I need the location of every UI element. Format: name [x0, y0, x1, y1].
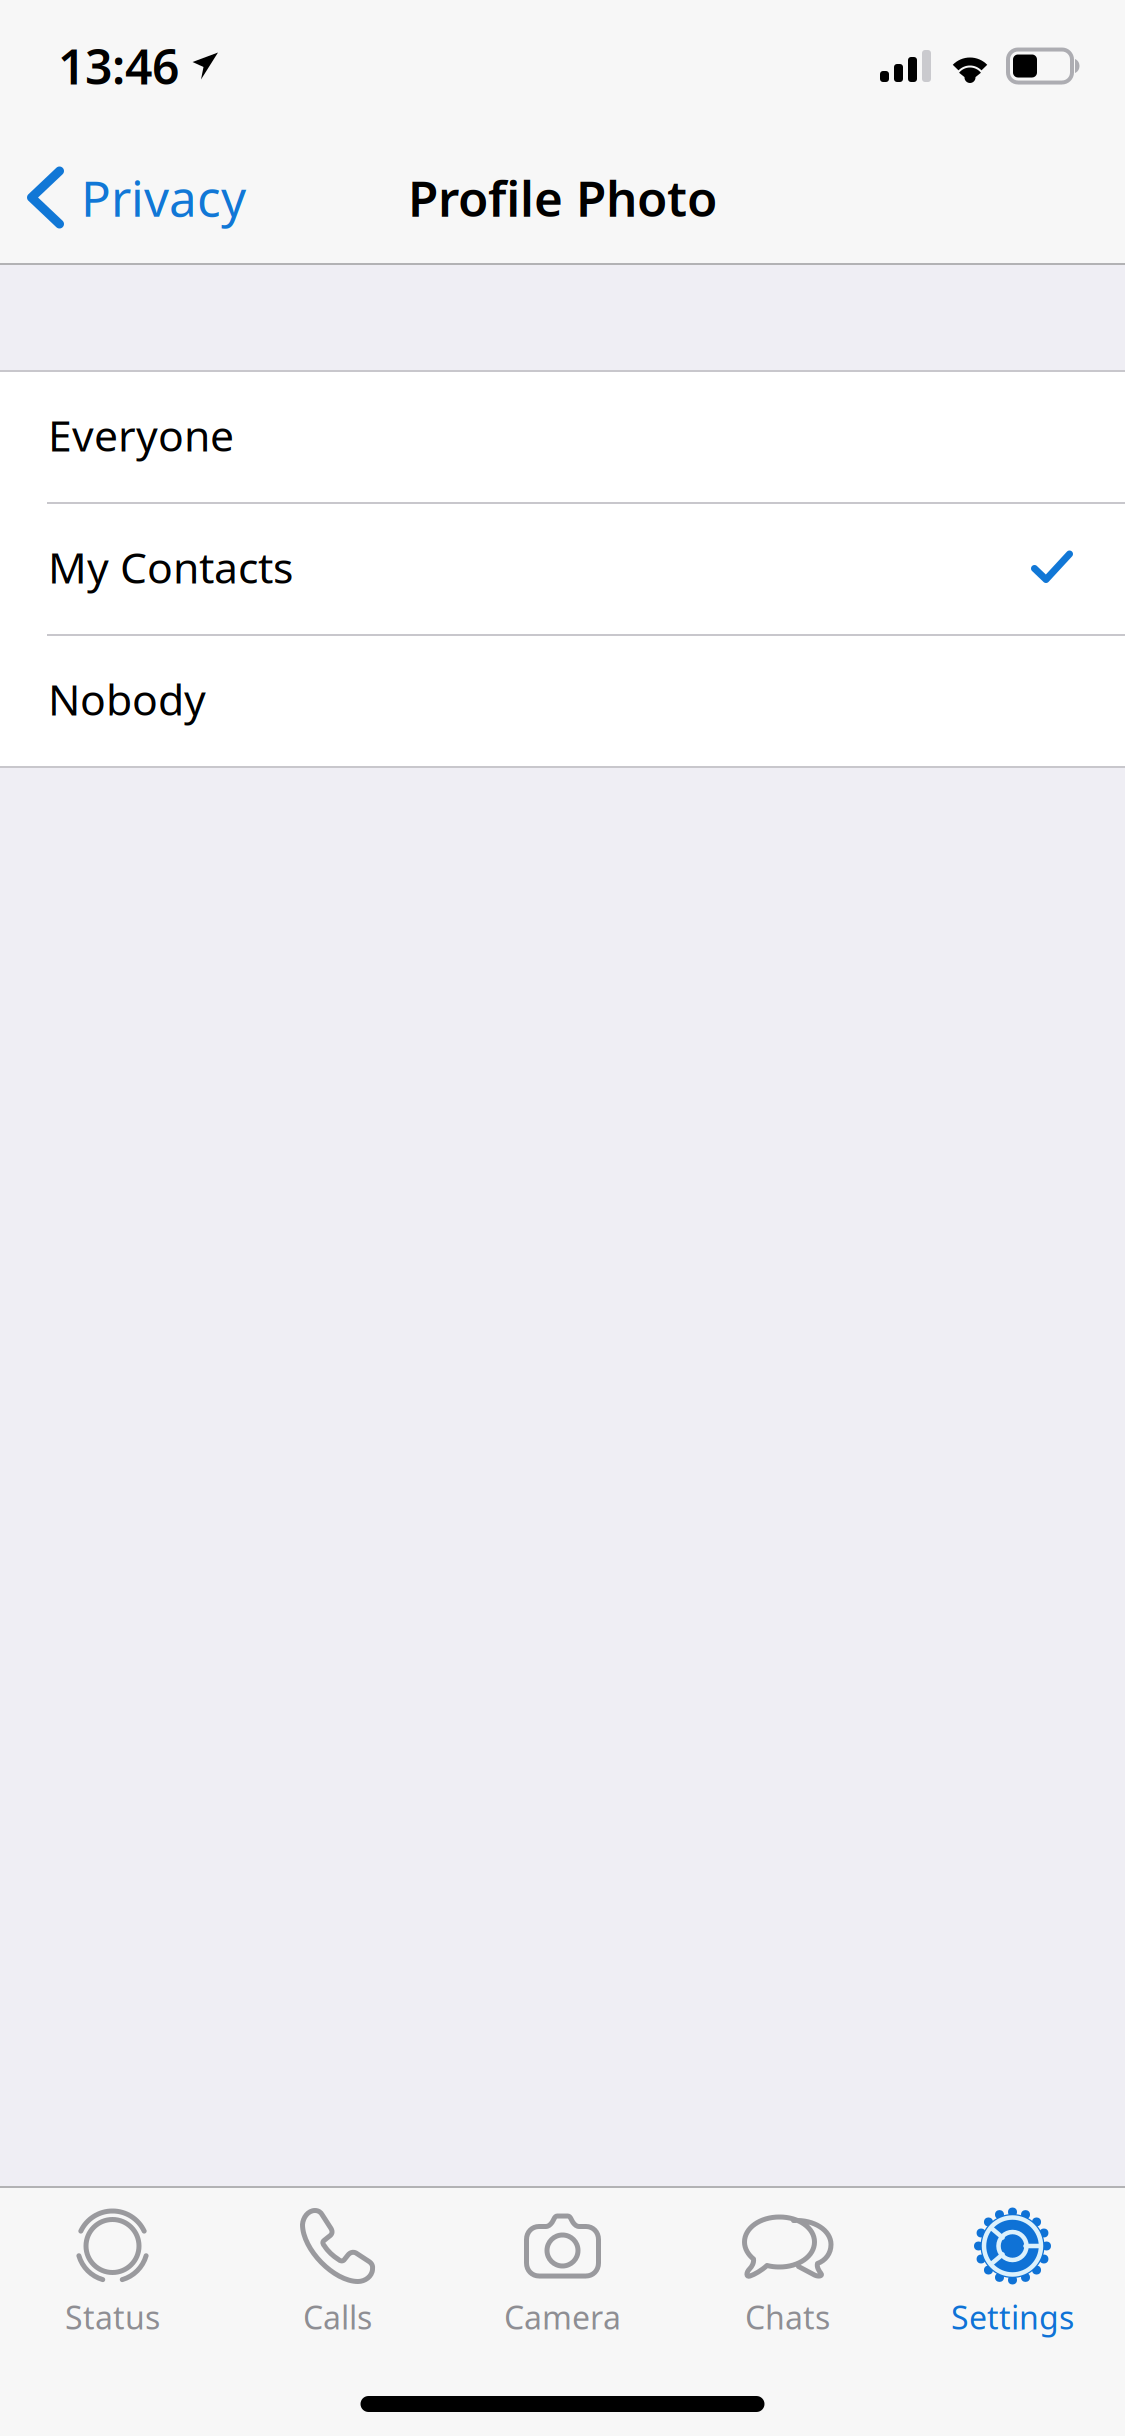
staticText: Settings	[951, 2296, 1074, 2338]
button[interactable]: Status	[0, 2188, 225, 2340]
staticText: Calls	[303, 2296, 372, 2338]
button[interactable]: My Contacts	[0, 504, 1125, 634]
button[interactable]: Settings	[900, 2188, 1125, 2340]
button[interactable]: Everyone	[0, 372, 1125, 502]
staticText: Nobody	[48, 671, 206, 727]
staticText: Profile Photo	[408, 165, 717, 230]
button[interactable]: Nobody	[0, 636, 1125, 766]
button[interactable]: Camera	[450, 2188, 675, 2340]
button[interactable]: Calls	[225, 2188, 450, 2340]
staticText: Everyone	[48, 407, 234, 463]
button[interactable]: Chats	[675, 2188, 900, 2340]
staticText: Privacy	[81, 165, 246, 230]
staticText: My Contacts	[48, 539, 293, 595]
staticText: 13:46	[58, 34, 179, 98]
staticText: Chats	[745, 2296, 830, 2338]
button[interactable]: Privacy	[0, 137, 270, 257]
staticText: Status	[65, 2296, 160, 2338]
staticText: Camera	[504, 2296, 621, 2338]
